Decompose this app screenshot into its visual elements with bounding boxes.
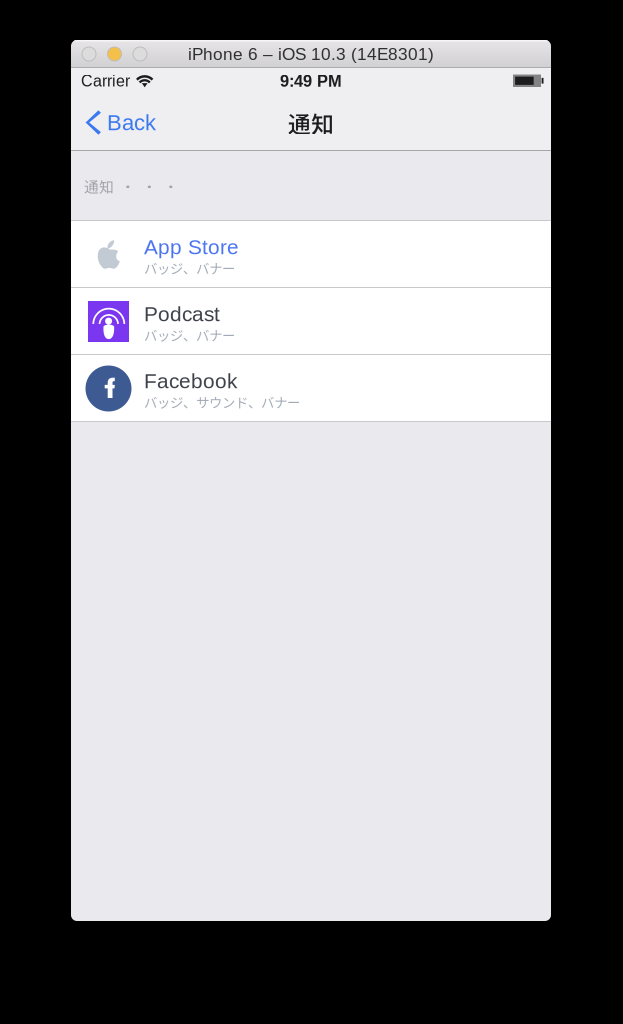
staticText: 通知 (288, 106, 334, 139)
staticText: バッジ、バナー (144, 325, 235, 344)
button[interactable]: Back (71, 94, 168, 150)
staticText: バッジ、バナー (144, 258, 235, 277)
staticText: ・ (163, 175, 178, 197)
staticText: バッジ、サウンド、バナー (144, 392, 300, 411)
staticText: ・ (120, 175, 135, 197)
staticText: 9:49 PM (280, 72, 342, 90)
staticText: Podcast (144, 302, 220, 326)
staticText: App Store (144, 235, 239, 259)
staticText: ・ (142, 175, 157, 197)
button[interactable]: Facebook (71, 355, 551, 422)
staticText: iPhone 6 – iOS 10.3 (14E8301) (188, 44, 434, 64)
staticText: Back (107, 110, 156, 135)
staticText: Facebook (144, 369, 237, 393)
button[interactable]: Podcast (71, 288, 551, 355)
staticText: Carrier (81, 72, 130, 90)
button[interactable]: App Store (71, 221, 551, 288)
staticText: 通知 (84, 175, 114, 197)
